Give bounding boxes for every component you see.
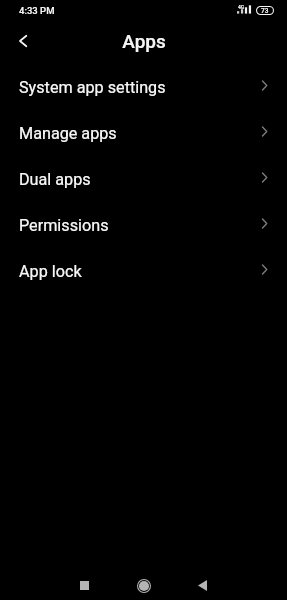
button[interactable]: Recents bbox=[64, 570, 104, 600]
button[interactable]: Home bbox=[124, 570, 164, 600]
staticText: System app settings bbox=[19, 78, 166, 97]
button[interactable]: Back bbox=[0, 22, 44, 60]
staticText: Dual apps bbox=[19, 170, 91, 189]
button[interactable]: App lock bbox=[0, 248, 287, 294]
button[interactable]: Back bbox=[182, 570, 222, 600]
staticText: Manage apps bbox=[19, 124, 117, 143]
button[interactable]: System app settings bbox=[0, 64, 287, 110]
staticText: 4G bbox=[238, 4, 245, 10]
button[interactable]: Dual apps bbox=[0, 156, 287, 202]
staticText: Permissions bbox=[19, 216, 109, 235]
staticText: 4:33 PM bbox=[19, 5, 55, 16]
button[interactable]: Manage apps bbox=[0, 110, 287, 156]
staticText: Apps bbox=[122, 30, 166, 52]
staticText: App lock bbox=[19, 262, 82, 281]
staticText: 73 bbox=[261, 7, 269, 15]
button[interactable]: Permissions bbox=[0, 202, 287, 248]
